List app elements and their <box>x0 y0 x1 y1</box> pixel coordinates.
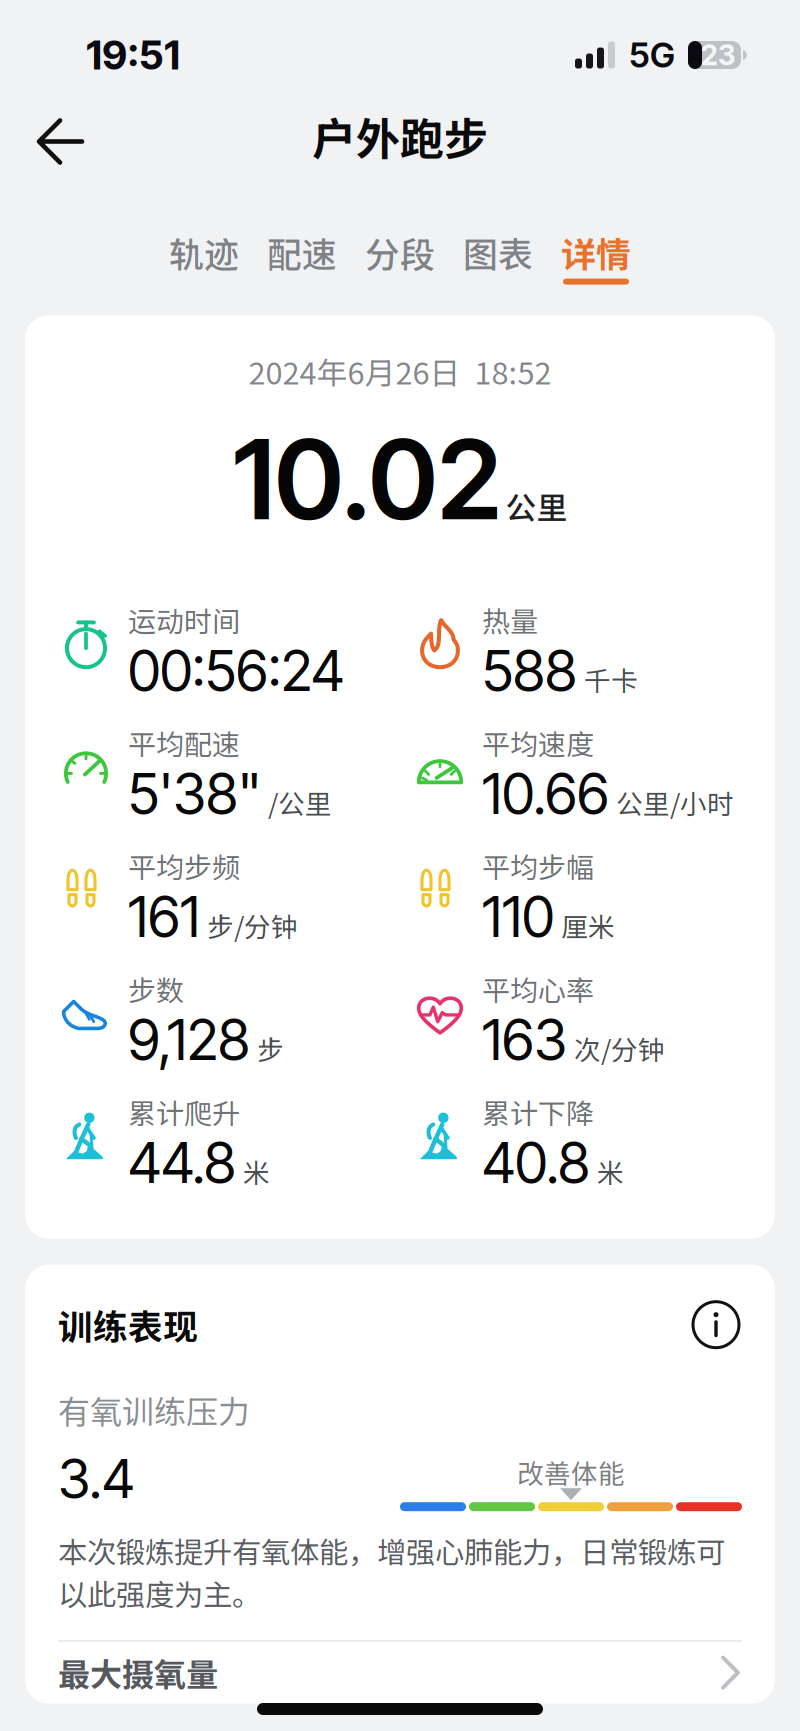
staticText: 40.8 <box>482 1129 590 1197</box>
staticText: 千卡 <box>584 660 638 699</box>
staticText: 最大摄氧量 <box>58 1649 218 1696</box>
staticText: 分段 <box>365 227 435 278</box>
staticText: 图表 <box>463 227 533 278</box>
staticText: 步/分钟 <box>207 906 298 945</box>
staticText: 米 <box>597 1152 624 1191</box>
staticText: 平均配速 <box>128 722 240 763</box>
staticText: 平均心率 <box>482 968 594 1009</box>
button[interactable]: 详细信息 <box>690 1299 742 1351</box>
staticText: 5'38" <box>128 760 261 828</box>
staticText: 23 <box>701 38 736 72</box>
staticText: 公里 <box>505 484 567 528</box>
staticText: 步 <box>257 1029 284 1068</box>
button[interactable]: 图表 <box>449 217 547 291</box>
staticText: 次/分钟 <box>574 1029 665 1068</box>
button[interactable]: 最大摄氧量 <box>58 1642 742 1704</box>
staticText: 平均步频 <box>128 845 240 886</box>
staticText: 10.02 <box>232 413 501 546</box>
staticText: 公里/小时 <box>616 783 734 822</box>
staticText: 19:51 <box>86 31 180 79</box>
staticText: 44.8 <box>128 1129 236 1197</box>
staticText: 110 <box>482 883 554 951</box>
staticText: 平均速度 <box>482 722 594 763</box>
staticText: 运动时间 <box>128 599 240 640</box>
button[interactable]: 详情 <box>547 217 645 291</box>
staticText: 2024年6月26日 18:52 <box>248 349 551 393</box>
staticText: 平均步幅 <box>482 845 594 886</box>
staticText: 户外跑步 <box>312 104 488 168</box>
staticText: 588 <box>482 637 577 705</box>
button[interactable]: 配速 <box>253 217 351 291</box>
staticText: 本次锻炼提升有氧体能，增强心肺能力，日常锻炼可以此强度为主。 <box>58 1529 725 1614</box>
staticText: 步数 <box>128 968 184 1009</box>
staticText: 改善体能 <box>517 1453 625 1491</box>
staticText: 详情 <box>561 227 631 278</box>
staticText: 配速 <box>267 227 337 278</box>
staticText: 热量 <box>482 599 538 640</box>
staticText: 训练表现 <box>58 1300 198 1350</box>
staticText: /公里 <box>268 783 332 822</box>
staticText: 累计下降 <box>482 1091 594 1132</box>
staticText: 轨迹 <box>169 227 239 278</box>
staticText: 163 <box>482 1006 567 1074</box>
staticText: 累计爬升 <box>128 1091 240 1132</box>
staticText: 厘米 <box>561 906 615 945</box>
button[interactable]: 返回 <box>21 97 100 186</box>
staticText: 米 <box>243 1152 270 1191</box>
staticText: 3.4 <box>58 1445 135 1511</box>
staticText: 9,128 <box>128 1006 250 1074</box>
button[interactable]: 分段 <box>351 217 449 291</box>
staticText: 00:56:24 <box>128 637 344 705</box>
staticText: 161 <box>128 883 200 951</box>
staticText: 10.66 <box>482 760 609 828</box>
staticText: 有氧训练压力 <box>58 1387 250 1433</box>
button[interactable]: 轨迹 <box>155 217 253 291</box>
staticText: 5G <box>629 34 675 76</box>
